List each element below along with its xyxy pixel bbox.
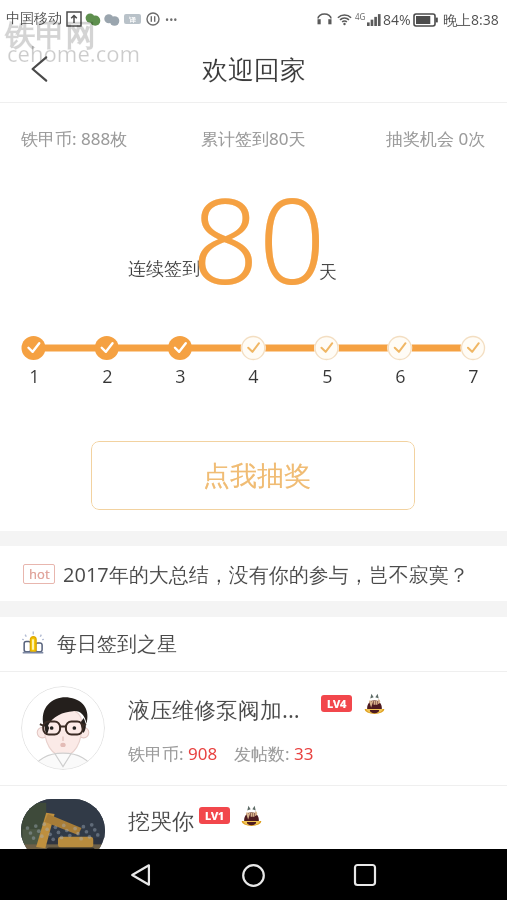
staticText: LV4: [327, 696, 347, 711]
button[interactable]: Back: [0, 41, 64, 101]
staticText: 2: [102, 364, 113, 389]
staticText: 挖哭你: [128, 808, 194, 836]
staticText: 连续签到: [128, 258, 200, 281]
staticText: 84%: [383, 10, 411, 29]
staticText: 33: [294, 742, 314, 765]
staticText: 80: [192, 159, 326, 318]
staticText: 1: [29, 364, 40, 389]
staticText: 7: [468, 364, 479, 389]
button[interactable]: hot: [0, 546, 507, 602]
staticText: 欢迎回家: [202, 54, 306, 87]
button[interactable]: 点我抽奖: [91, 441, 415, 510]
staticText: 铁甲币:: [128, 742, 188, 765]
staticText: 5: [322, 364, 333, 389]
staticText: 6: [395, 364, 406, 389]
staticText: 908: [188, 742, 218, 765]
staticText: 天: [319, 261, 337, 284]
staticText: 铁甲网: [5, 17, 95, 55]
staticText: 晚上8:38: [443, 10, 499, 29]
staticText: 译: [129, 15, 136, 24]
staticText: LV1: [205, 808, 225, 823]
staticText: 液压维修泵阀加...: [128, 694, 300, 724]
staticText: 4: [248, 364, 259, 389]
staticText: cehome.com: [7, 38, 141, 68]
button[interactable]: Recent apps: [341, 851, 389, 899]
staticText: hot: [29, 565, 50, 583]
staticText: 2017年的大总结，没有你的参与，岂不寂寞？: [63, 561, 469, 588]
button[interactable]: Home: [229, 851, 277, 899]
button[interactable]: 液压维修泵阀加...: [0, 672, 507, 785]
staticText: 抽奖机会 0次: [386, 127, 486, 150]
staticText: 累计签到80天: [201, 127, 306, 150]
staticText: 4G: [355, 11, 366, 22]
staticText: 发帖数:: [234, 742, 294, 765]
staticText: 3: [175, 364, 186, 389]
staticText: 点我抽奖: [203, 459, 311, 493]
staticText: 中国移动: [6, 10, 62, 28]
button[interactable]: Back: [117, 851, 165, 899]
staticText: 每日签到之星: [57, 632, 177, 657]
button[interactable]: 挖哭你: [0, 786, 507, 849]
staticText: •••: [165, 12, 178, 27]
staticText: 铁甲币: 888枚: [21, 127, 128, 150]
